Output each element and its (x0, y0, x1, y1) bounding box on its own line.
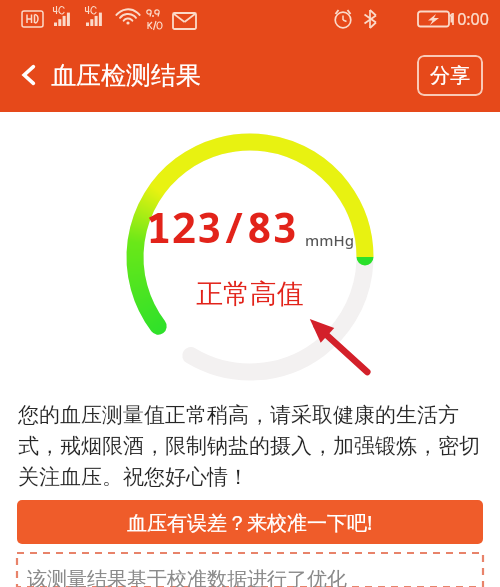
button[interactable]: 分享 (417, 55, 483, 96)
staticText: 血压检测结果 (51, 60, 201, 91)
staticText: 正常高值 (196, 277, 304, 311)
staticText: 您的血压测量值正常稍高，请采取健康的生活方式，戒烟限酒，限制钠盐的摄入，加强锻炼… (18, 402, 484, 490)
staticText: 分享 (430, 63, 470, 88)
button[interactable]: 血压有误差？来校准一下吧! (17, 500, 483, 544)
staticText: 123/83 (146, 198, 298, 255)
staticText: mmHg (305, 230, 354, 250)
button[interactable]: Back (12, 58, 46, 92)
staticText: 10:00 (448, 8, 489, 30)
staticText: 血压有误差？来校准一下吧! (127, 509, 373, 536)
staticText: 该测量结果基于校准数据进行了优化 (27, 567, 347, 587)
